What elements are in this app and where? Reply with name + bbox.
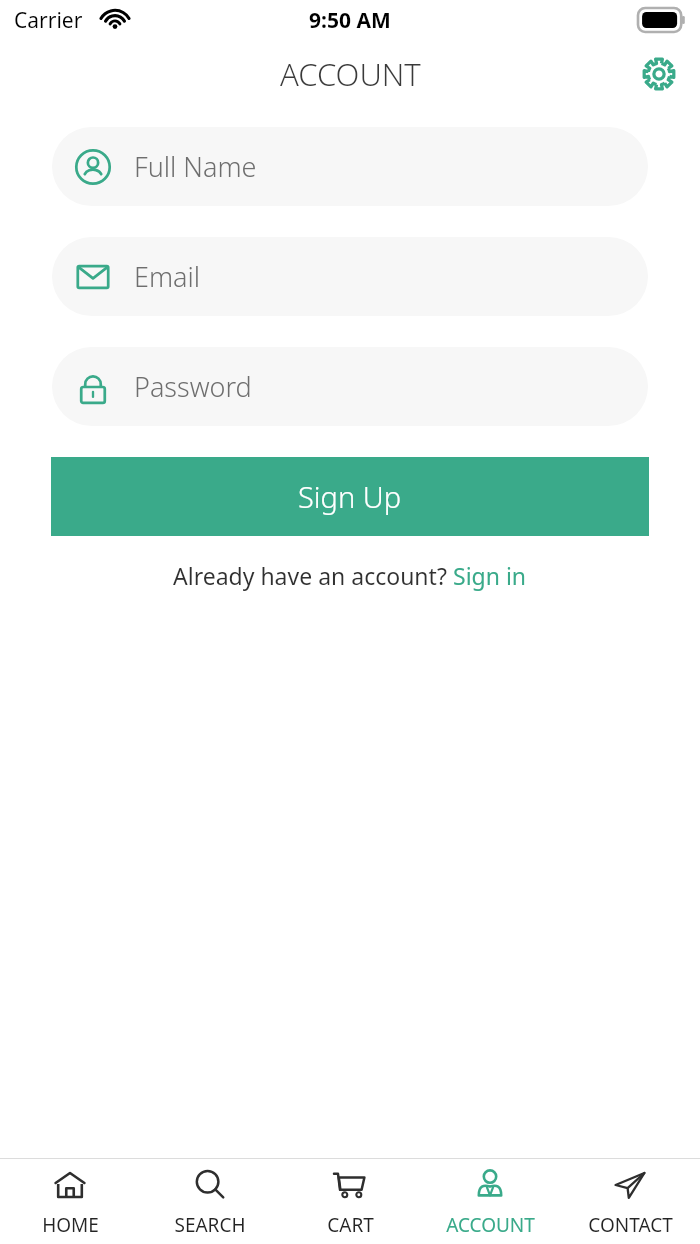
staticText: HOME	[42, 1212, 99, 1238]
button[interactable]: CART	[280, 1159, 420, 1244]
staticText: Sign in	[453, 560, 527, 591]
button[interactable]: ACCOUNT	[420, 1159, 560, 1244]
staticText: CART	[327, 1212, 374, 1238]
button[interactable]: SEARCH	[140, 1159, 280, 1244]
staticText: 9:50 AM	[309, 6, 391, 35]
button[interactable]: CONTACT	[560, 1159, 700, 1244]
staticText: ACCOUNT	[280, 53, 421, 95]
staticText: Sign Up	[298, 477, 402, 516]
staticText: SEARCH	[174, 1212, 246, 1238]
staticText: Email	[134, 258, 201, 295]
staticText: Password	[134, 368, 252, 405]
button[interactable]: Sign in	[453, 560, 527, 591]
button[interactable]: Full Name	[52, 127, 648, 206]
button[interactable]: HOME	[0, 1159, 140, 1244]
staticText: Full Name	[134, 148, 257, 185]
staticText: Carrier	[14, 6, 83, 35]
staticText: Already have an account?	[173, 560, 453, 591]
button[interactable]: Settings	[636, 51, 682, 97]
button[interactable]: Sign Up	[51, 457, 649, 536]
button[interactable]: Email	[52, 237, 648, 316]
button[interactable]: Password	[52, 347, 648, 426]
staticText: CONTACT	[588, 1212, 673, 1238]
staticText: ACCOUNT	[446, 1212, 535, 1238]
